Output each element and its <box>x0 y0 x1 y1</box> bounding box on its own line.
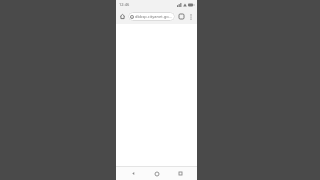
button[interactable]: Recent apps <box>174 167 187 180</box>
staticText: 12:46 <box>119 2 130 7</box>
button[interactable]: Home <box>118 12 127 21</box>
button[interactable]: dbbsp.cityanet.gov.tr/CH1 <box>128 12 175 21</box>
button[interactable]: Tabs <box>177 12 186 21</box>
button[interactable]: Back <box>127 167 140 180</box>
staticText: dbbsp.cityanet.gov.tr/CH1 <box>135 14 173 19</box>
button[interactable]: Home <box>150 167 163 180</box>
button[interactable]: More options <box>186 12 195 21</box>
